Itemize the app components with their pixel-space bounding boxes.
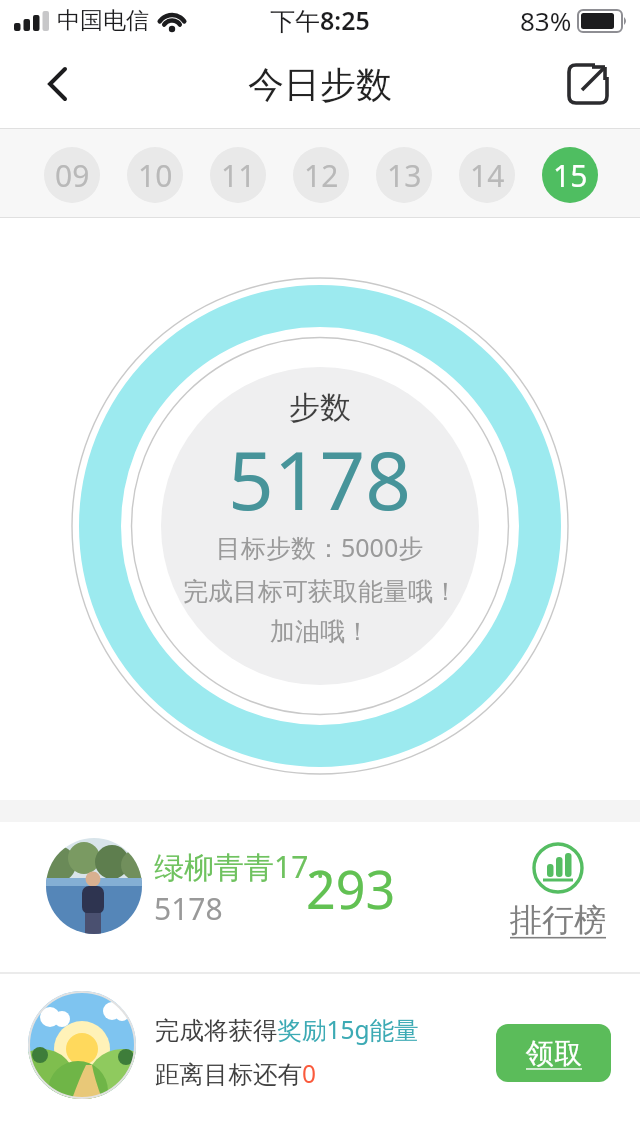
- staticText: 10: [138, 155, 173, 196]
- staticText: 距离目标还有0: [155, 1057, 317, 1090]
- staticText: 排行榜: [510, 900, 606, 940]
- staticText: 293: [306, 853, 396, 924]
- staticText: 今日步数: [248, 62, 392, 107]
- button[interactable]: 11: [210, 147, 266, 203]
- staticText: 5178: [154, 888, 223, 929]
- staticText: 领取: [526, 1036, 582, 1071]
- staticText: 绿柳青青17...: [154, 846, 333, 887]
- button[interactable]: 领取: [496, 1024, 611, 1082]
- staticText: 目标步数：5000步: [216, 530, 424, 564]
- button[interactable]: 排行榜: [510, 842, 606, 940]
- button[interactable]: 10: [127, 147, 183, 203]
- staticText: 13: [387, 155, 422, 196]
- staticText: 加油哦！: [270, 616, 370, 647]
- button[interactable]: 13: [376, 147, 432, 203]
- staticText: 09: [55, 155, 90, 196]
- staticText: 14: [470, 155, 505, 196]
- staticText: 83%: [520, 3, 572, 38]
- button[interactable]: 14: [459, 147, 515, 203]
- staticText: 12: [304, 155, 339, 196]
- staticText: 中国电信: [57, 6, 149, 35]
- staticText: 11: [221, 155, 256, 196]
- staticText: 步数: [289, 388, 351, 427]
- button[interactable]: 15: [542, 147, 598, 203]
- staticText: 完成目标可获取能量哦！: [183, 576, 458, 607]
- button[interactable]: 12: [293, 147, 349, 203]
- staticText: 完成将获得奖励15g能量: [155, 1013, 419, 1046]
- button[interactable]: 09: [44, 147, 100, 203]
- staticText: 下午8:25: [270, 3, 370, 37]
- staticText: 5178: [228, 424, 412, 533]
- button[interactable]: 绿柳青青17...: [0, 822, 640, 972]
- button[interactable]: [562, 58, 614, 110]
- staticText: 15: [553, 155, 588, 196]
- button[interactable]: [34, 60, 82, 108]
